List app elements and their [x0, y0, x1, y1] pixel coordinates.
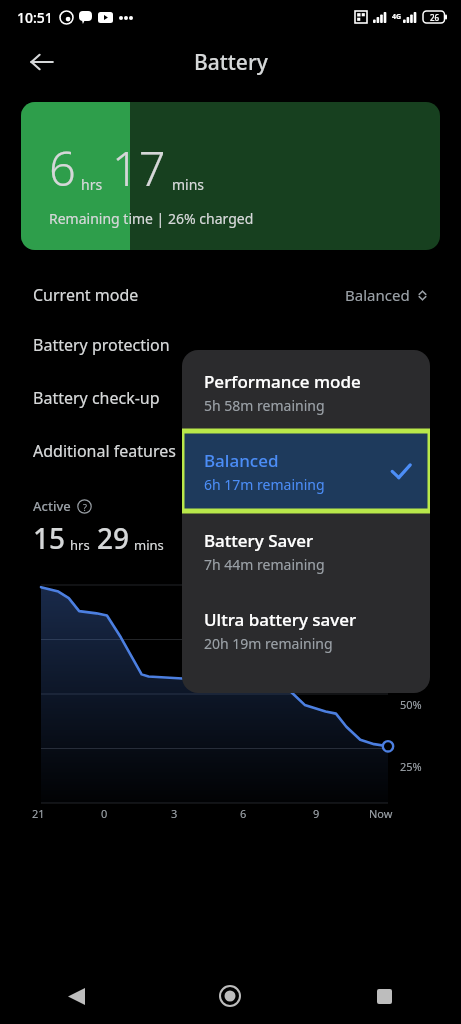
button[interactable]: Battery Saver	[182, 523, 430, 580]
button[interactable]: Battery check-up	[0, 371, 461, 424]
staticText: 3	[171, 806, 178, 821]
button[interactable]: Balanced	[182, 431, 430, 511]
button[interactable]: Current mode	[0, 272, 461, 318]
staticText: Battery	[194, 48, 268, 77]
staticText: Current mode	[33, 284, 139, 306]
staticText: 25%	[400, 759, 422, 774]
staticText: 26	[430, 12, 440, 23]
staticText: Balanced	[345, 285, 410, 305]
staticText: Additional features	[33, 440, 176, 462]
staticText: 9	[313, 806, 320, 821]
staticText: hrs	[81, 175, 103, 194]
staticText: 29	[97, 519, 130, 557]
staticText: Ultra battery saver	[204, 608, 357, 631]
staticText: 15	[33, 519, 66, 557]
button[interactable]: Battery protection	[0, 318, 461, 371]
staticText: mins	[134, 536, 164, 554]
staticText: Battery protection	[33, 334, 170, 356]
staticText: Battery check-up	[33, 387, 160, 409]
button[interactable]: Back	[20, 40, 64, 84]
staticText: 21	[32, 806, 45, 821]
staticText: Balanced	[204, 449, 279, 472]
button[interactable]: Help about active time	[77, 499, 92, 514]
staticText: 5h 58m remaining	[204, 396, 325, 415]
staticText: hrs	[70, 536, 90, 554]
staticText: Remaining time | 26% charged	[49, 209, 254, 228]
button[interactable]: Performance mode	[182, 364, 430, 421]
button[interactable]: Home	[153, 968, 307, 1024]
staticText: 17	[112, 136, 166, 200]
staticText: 10:51	[17, 8, 53, 27]
button[interactable]: 6	[21, 102, 440, 250]
staticText: 20h 19m remaining	[204, 634, 333, 653]
staticText: 50%	[400, 697, 422, 712]
staticText: 4G	[392, 12, 402, 22]
staticText: Now	[369, 806, 393, 821]
staticText: 6	[49, 136, 76, 200]
button[interactable]: Recent apps	[307, 968, 461, 1024]
staticText: 6	[240, 806, 247, 821]
staticText: ?	[83, 501, 87, 513]
staticText: mins	[172, 175, 205, 194]
staticText: 0	[101, 806, 108, 821]
staticText: Active	[33, 497, 71, 515]
staticText: 7h 44m remaining	[204, 555, 325, 574]
button[interactable]: Ultra battery saver	[182, 602, 430, 659]
staticText: Battery Saver	[204, 529, 314, 552]
staticText: Performance mode	[204, 370, 361, 393]
button[interactable]: Additional features	[0, 424, 461, 477]
staticText: 6h 17m remaining	[204, 475, 325, 494]
button[interactable]: Back	[0, 968, 153, 1024]
